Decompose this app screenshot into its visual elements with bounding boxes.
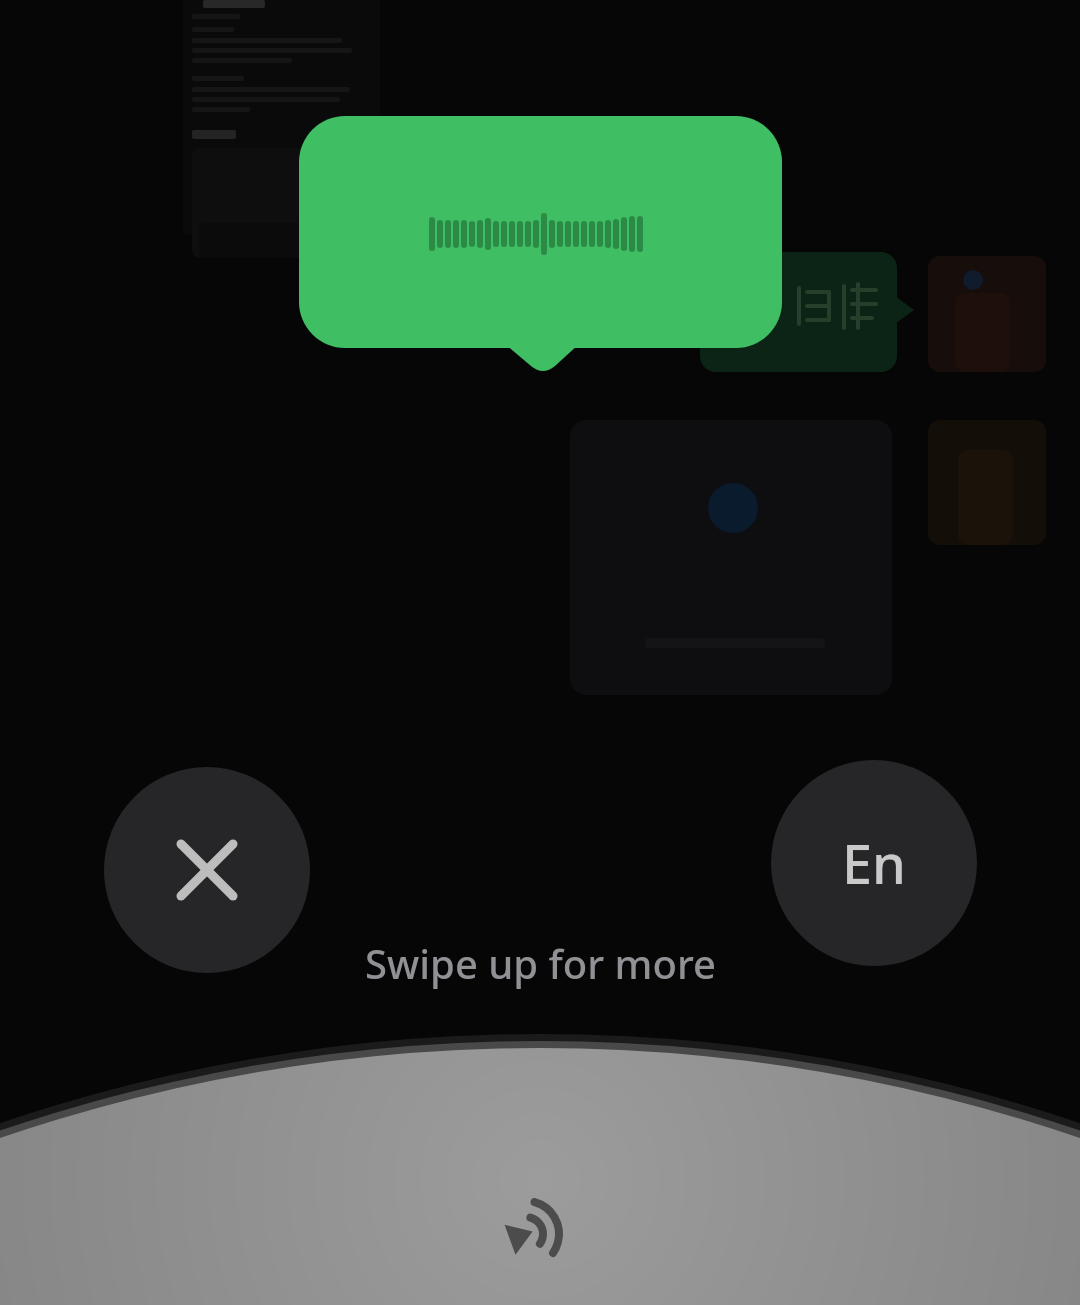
button[interactable]: En (771, 760, 977, 966)
staticText: En (842, 826, 906, 900)
button[interactable] (0, 1042, 1080, 1305)
staticText: Swipe up for more (365, 936, 716, 990)
button[interactable] (104, 767, 310, 973)
